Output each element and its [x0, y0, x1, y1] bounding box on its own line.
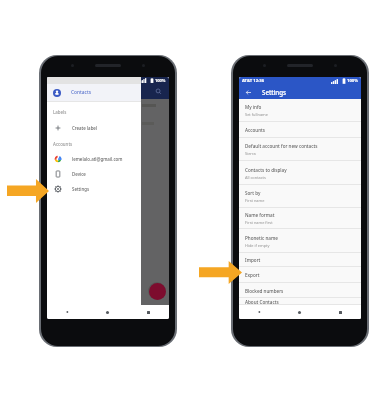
button[interactable]: Export [239, 267, 361, 283]
button[interactable]: Contacts to display [239, 161, 361, 185]
staticText: AT&T 12:36 [242, 78, 265, 84]
button[interactable]: About Contacts [239, 298, 361, 305]
button[interactable]: Default account for new contacts [239, 138, 361, 161]
staticText: Sierra [245, 151, 256, 156]
button[interactable]: Sort by [239, 185, 361, 208]
staticText: Create label [72, 125, 98, 131]
staticText: Import [245, 257, 261, 263]
staticText: My info [245, 104, 262, 110]
button[interactable]: Accounts [239, 122, 361, 138]
staticText: Blocked numbers [245, 288, 284, 294]
staticText: Device [72, 171, 86, 177]
button[interactable]: Recent apps [128, 305, 169, 319]
button[interactable]: Contacts [47, 84, 141, 101]
staticText: Export [245, 272, 260, 278]
button[interactable]: Create contact [149, 283, 166, 300]
staticText: Sort by [245, 190, 261, 196]
staticText: All contacts [245, 175, 266, 180]
button[interactable]: Create label [47, 120, 141, 135]
staticText: Settings [262, 88, 287, 96]
button[interactable]: My info [239, 99, 361, 122]
staticText: 100% [155, 78, 166, 83]
button[interactable]: Device [47, 166, 141, 181]
staticText: 100% [347, 78, 358, 84]
button[interactable]: Back [244, 88, 252, 96]
staticText: Set fullname [245, 112, 268, 117]
button[interactable]: Phonetic name [239, 229, 361, 253]
staticText: Default account for new contacts [245, 143, 318, 149]
staticText: Accounts [245, 127, 266, 133]
button[interactable]: lemelalo.atl@gmail.com [47, 151, 141, 166]
staticText: Settings [72, 186, 90, 192]
staticText: About Contacts [245, 299, 279, 305]
button[interactable]: Import [239, 253, 361, 267]
staticText: Phonetic name [245, 235, 278, 241]
button[interactable]: Home [279, 305, 320, 319]
staticText: Contacts [71, 89, 92, 96]
button[interactable]: Home [87, 305, 128, 319]
button[interactable]: Settings [47, 181, 141, 196]
staticText: First name [245, 198, 265, 203]
staticText: Contacts to display [245, 167, 287, 173]
staticText: lemelalo.atl@gmail.com [72, 156, 123, 162]
button[interactable]: Recent apps [320, 305, 361, 319]
staticText: Accounts [53, 141, 73, 147]
staticText: Hide if empty [245, 243, 270, 248]
staticText: First name first [245, 220, 273, 225]
button[interactable]: Blocked numbers [239, 283, 361, 298]
button[interactable]: Back [239, 305, 279, 319]
staticText: Name format [245, 212, 275, 218]
button[interactable]: Name format [239, 208, 361, 229]
button[interactable]: Back [47, 305, 87, 319]
staticText: Labels [53, 109, 67, 115]
